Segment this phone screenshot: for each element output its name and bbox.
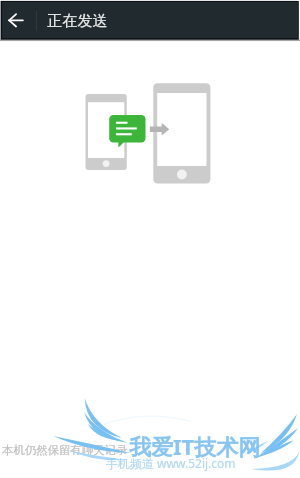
staticText: 本机仍然保留有聊天记录 bbox=[2, 443, 128, 457]
staticText: 正在发送 bbox=[47, 11, 108, 30]
staticText: 手机频道 www.52ij.com bbox=[106, 455, 236, 471]
staticText: 我爱IT技术网 bbox=[129, 431, 261, 461]
button[interactable]: Back bbox=[0, 0, 35, 41]
